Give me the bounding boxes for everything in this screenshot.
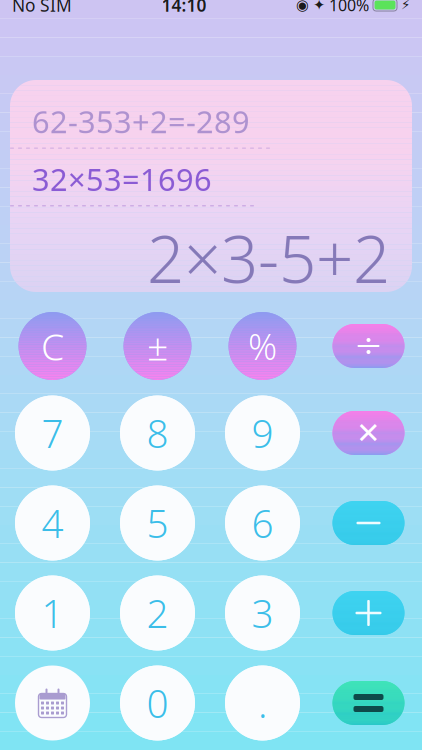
staticText: C: [41, 321, 64, 371]
button[interactable]: Divide: [332, 324, 404, 368]
staticText: ✦: [313, 0, 325, 13]
staticText: No SIM: [12, 0, 72, 16]
staticText: 0: [146, 677, 168, 729]
button[interactable]: .: [225, 665, 300, 740]
staticText: ✕: [356, 416, 381, 450]
button[interactable]: 3: [225, 575, 300, 650]
staticText: 9: [251, 407, 273, 459]
staticText: 5: [146, 497, 168, 549]
button[interactable]: C: [18, 312, 86, 380]
button[interactable]: 2: [120, 575, 195, 650]
button[interactable]: 4: [15, 485, 90, 560]
staticText: 100%: [329, 0, 369, 16]
button[interactable]: History: [15, 665, 90, 740]
button[interactable]: 6: [225, 485, 300, 560]
button[interactable]: ±: [123, 312, 191, 380]
staticText: 8: [146, 407, 168, 459]
staticText: 4: [41, 497, 63, 549]
button[interactable]: 0: [120, 665, 195, 740]
staticText: 6: [251, 497, 273, 549]
button[interactable]: 1: [15, 575, 90, 650]
staticText: ±: [147, 321, 168, 371]
button[interactable]: Add: [332, 591, 404, 635]
staticText: 2×3-5+2: [147, 214, 390, 301]
staticText: 1: [41, 587, 63, 639]
button[interactable]: Subtract: [332, 501, 404, 545]
staticText: 14:10: [161, 0, 206, 16]
button[interactable]: 7: [15, 395, 90, 470]
staticText: %: [248, 322, 277, 370]
button[interactable]: 8: [120, 395, 195, 470]
button[interactable]: Multiply: [332, 411, 404, 455]
staticText: .: [258, 677, 267, 729]
button[interactable]: 5: [120, 485, 195, 560]
staticText: 7: [41, 407, 63, 459]
staticText: 3: [251, 587, 273, 639]
staticText: ⚡︎: [401, 0, 410, 12]
staticText: 62-353+2=-289: [32, 101, 250, 142]
button[interactable]: Equals: [332, 681, 404, 725]
button[interactable]: %: [228, 312, 296, 380]
staticText: 32×53=1696: [32, 159, 212, 199]
staticText: 2: [146, 587, 168, 639]
staticText: ◉: [296, 0, 309, 13]
button[interactable]: 9: [225, 395, 300, 470]
